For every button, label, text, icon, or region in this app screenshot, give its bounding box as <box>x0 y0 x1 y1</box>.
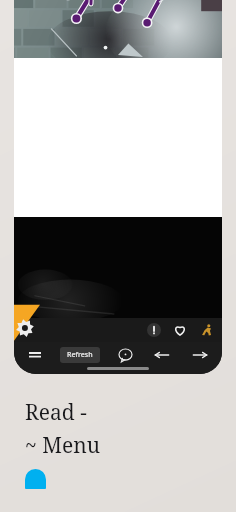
staticText: ~ Menu <box>25 431 101 460</box>
button[interactable]: Refresh <box>60 347 100 363</box>
staticText: Read - <box>25 398 87 427</box>
button[interactable]: Like <box>172 322 188 338</box>
button[interactable]: Menu <box>24 344 46 366</box>
staticText: Refresh <box>67 350 93 360</box>
button[interactable]: Report <box>146 322 162 338</box>
button[interactable]: Next <box>188 343 212 367</box>
button[interactable]: Previous <box>150 343 174 367</box>
button[interactable]: Comments <box>114 344 136 366</box>
button[interactable]: Settings <box>14 318 40 342</box>
button[interactable]: Share <box>198 322 214 338</box>
button[interactable] <box>25 469 46 489</box>
